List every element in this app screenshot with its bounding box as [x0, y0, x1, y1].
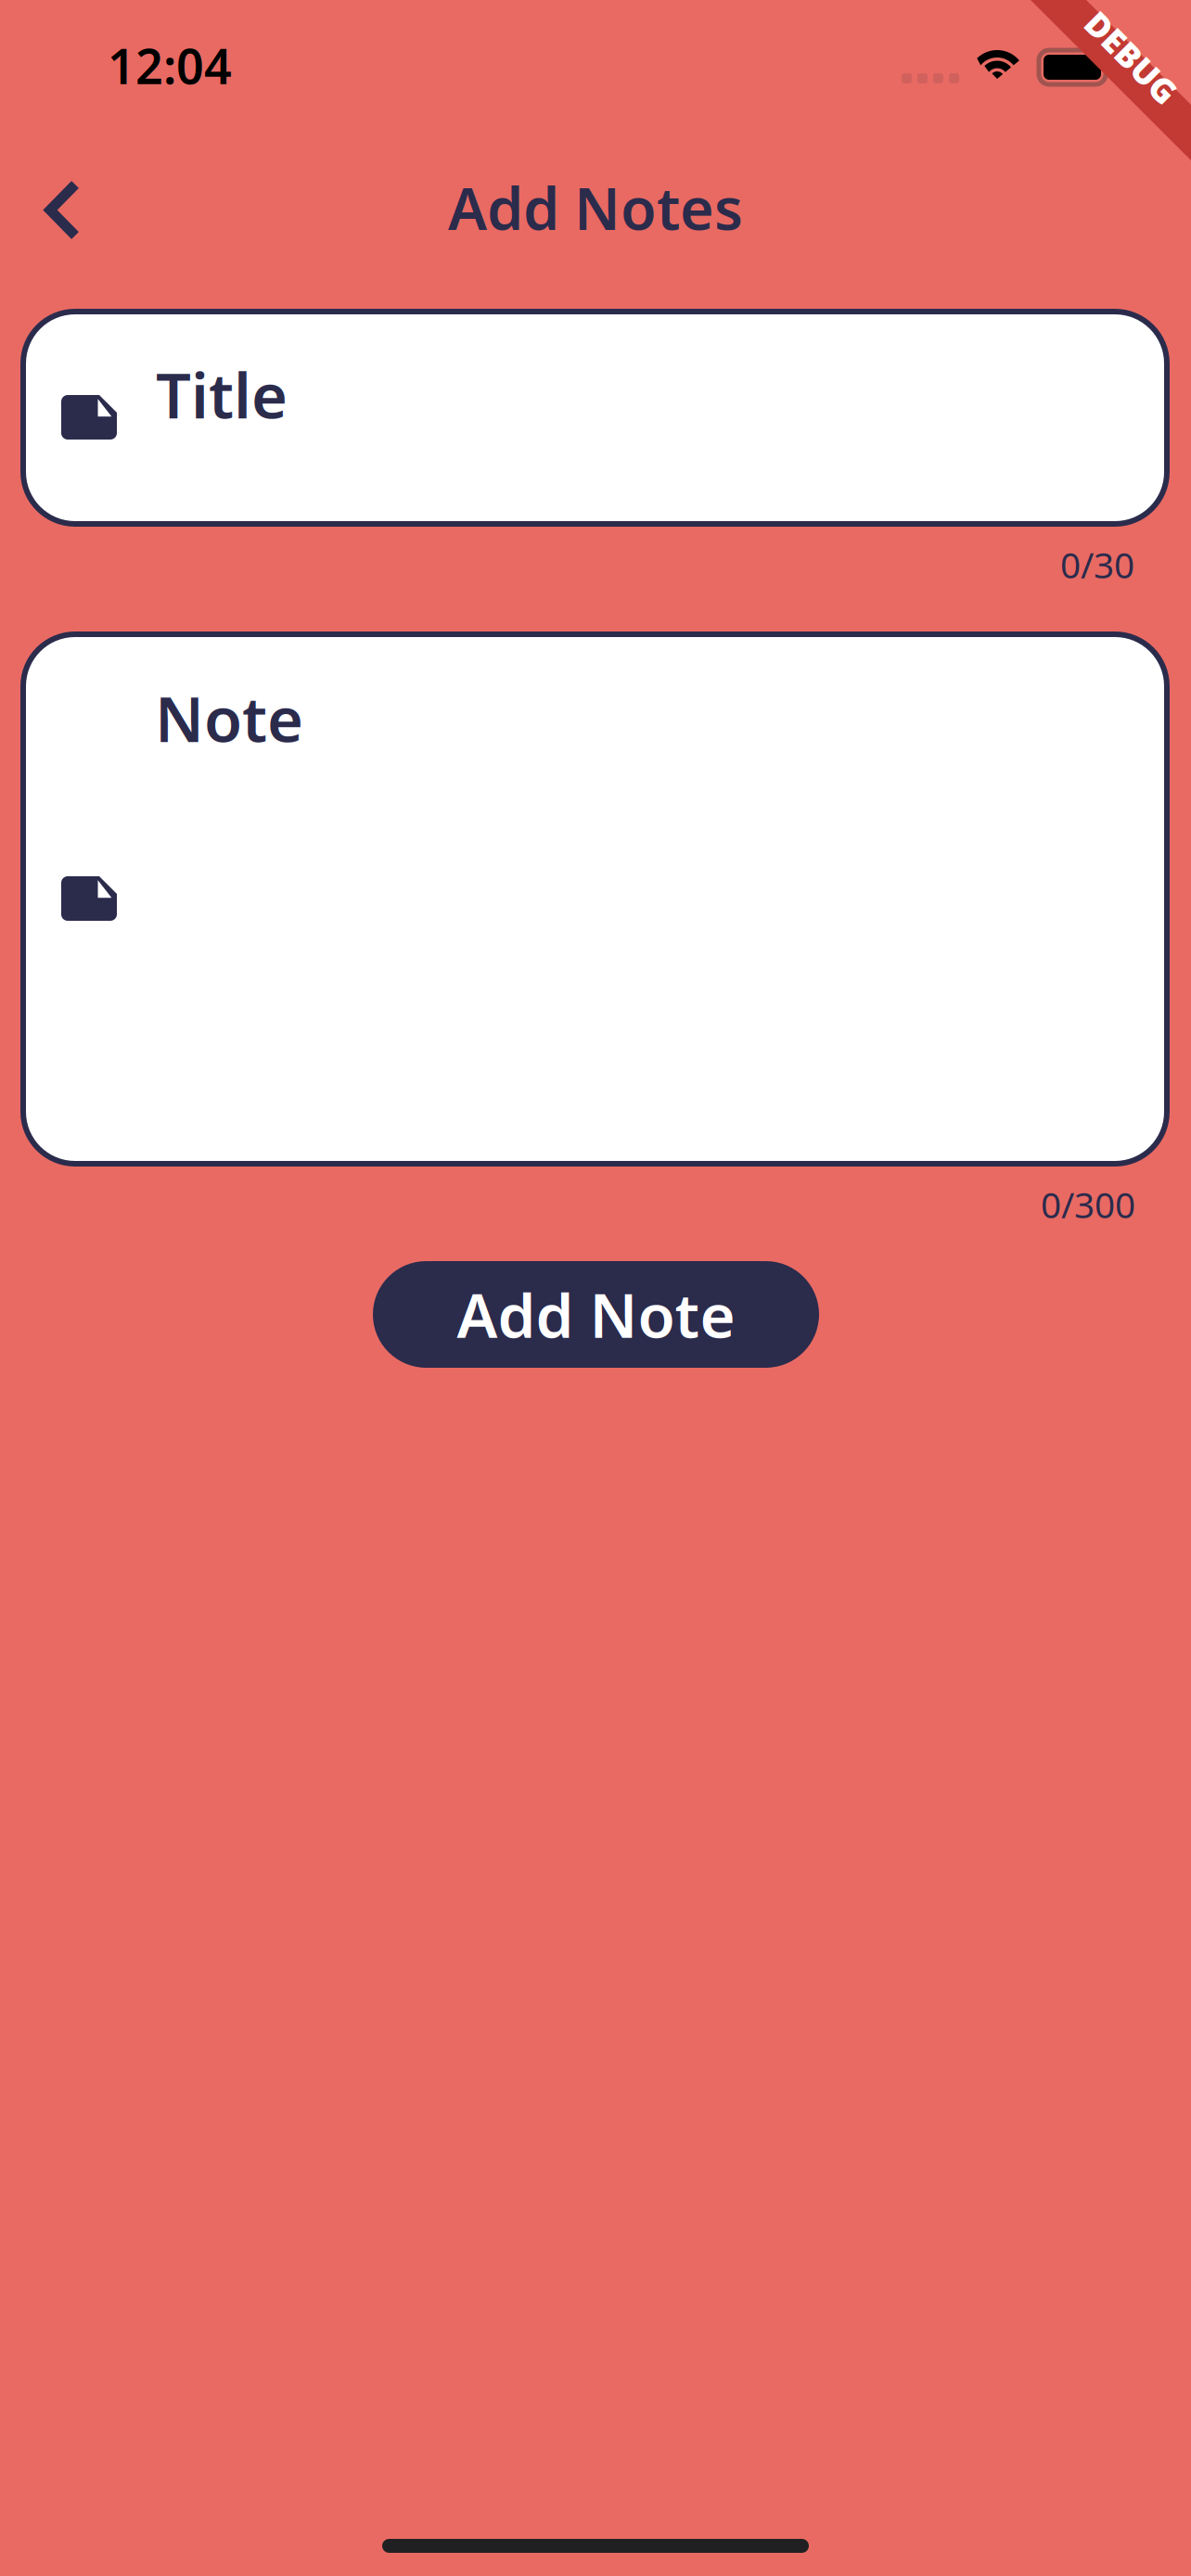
staticText: Title — [156, 353, 288, 435]
staticText: Add Notes — [448, 169, 743, 246]
button[interactable]: Note — [23, 634, 1167, 1164]
staticText: Note — [155, 677, 303, 759]
staticText: 0/30 — [1060, 541, 1134, 588]
staticText: Add Note — [457, 1274, 735, 1355]
staticText: DEBUG — [1074, 35, 1189, 80]
button[interactable]: Back — [0, 149, 122, 271]
button[interactable]: Title — [23, 312, 1167, 524]
staticText: 12:04 — [108, 33, 232, 97]
button[interactable]: Add Note — [373, 1261, 819, 1368]
staticText: 0/300 — [1041, 1180, 1135, 1228]
